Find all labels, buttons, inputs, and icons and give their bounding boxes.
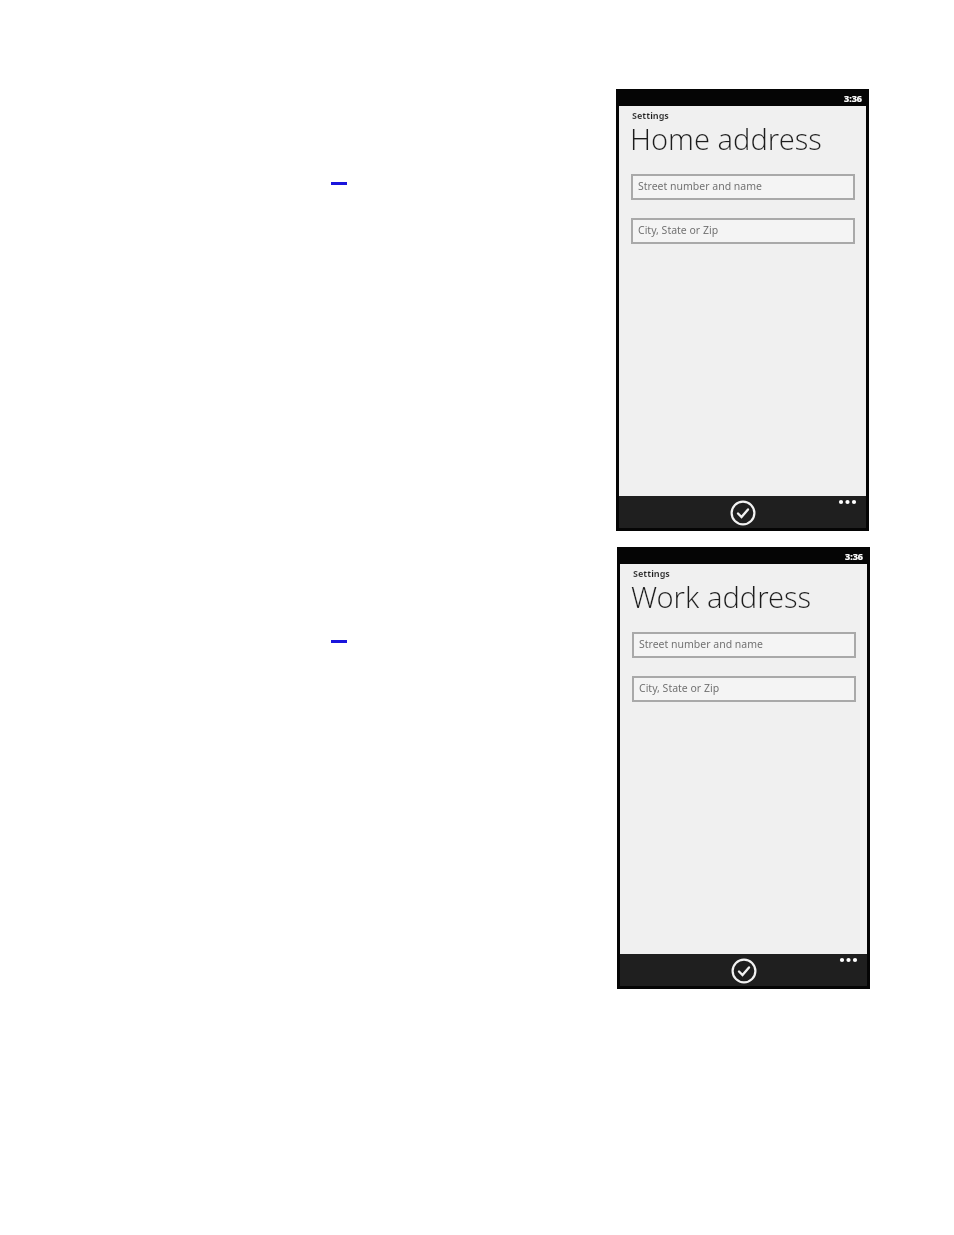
- button[interactable]: Street number and name: [631, 174, 855, 200]
- staticText: Settings: [632, 109, 669, 121]
- staticText: 3:36: [845, 550, 863, 562]
- button[interactable]: [731, 958, 757, 984]
- staticText: Street number and name: [638, 179, 762, 193]
- staticText: City, State or Zip: [639, 681, 720, 695]
- staticText: Work address: [631, 577, 812, 616]
- button[interactable]: [730, 500, 756, 526]
- button[interactable]: [839, 957, 859, 963]
- button[interactable]: City, State or Zip: [631, 218, 855, 244]
- staticText: City, State or Zip: [638, 223, 719, 237]
- button[interactable]: [838, 499, 858, 505]
- button[interactable]: Street number and name: [632, 632, 856, 658]
- staticText: 3:36: [844, 92, 862, 104]
- staticText: Home address: [630, 119, 822, 158]
- button[interactable]: City, State or Zip: [632, 676, 856, 702]
- staticText: Settings: [633, 567, 670, 579]
- staticText: Street number and name: [639, 637, 763, 651]
